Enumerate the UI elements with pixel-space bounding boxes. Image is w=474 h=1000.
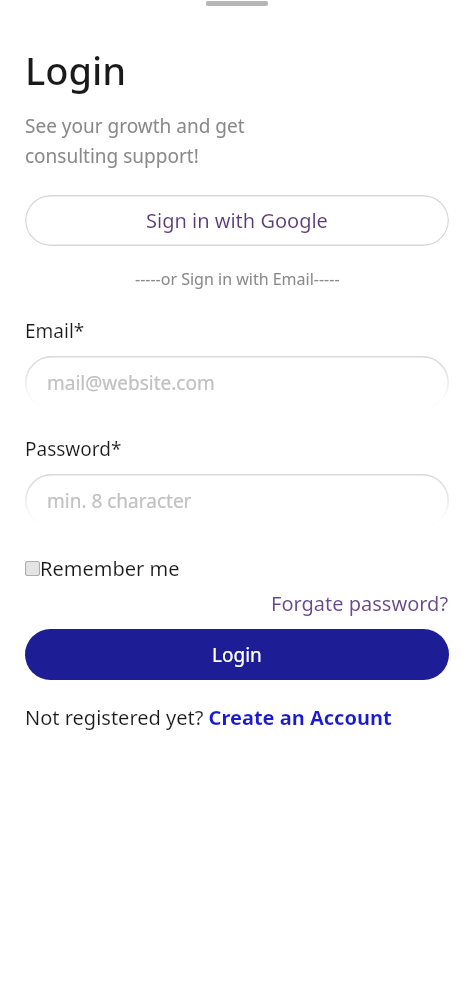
staticText: Remember me <box>40 555 180 582</box>
staticText: consulting support! <box>25 143 199 169</box>
button[interactable]: Remember me <box>25 555 180 582</box>
staticText: min. 8 character <box>47 488 192 514</box>
staticText: mail@website.com <box>47 370 215 396</box>
button[interactable]: Not registered yet? Create an Account <box>25 704 392 731</box>
staticText: Sign in with Google <box>146 207 328 234</box>
staticText: -----or Sign in with Email----- <box>135 268 340 290</box>
button[interactable]: min. 8 character <box>25 474 449 527</box>
button[interactable]: Sign in with Google <box>25 195 449 246</box>
staticText: Login <box>212 642 262 668</box>
staticText: Not registered yet? Create an Account <box>25 704 392 731</box>
button[interactable]: Login <box>25 629 449 680</box>
staticText: Login <box>25 44 127 96</box>
staticText: Email* <box>25 318 85 344</box>
button[interactable]: mail@website.com <box>25 356 449 409</box>
staticText: See your growth and get <box>25 113 245 139</box>
button[interactable]: Forgate password? <box>271 590 449 617</box>
staticText: Forgate password? <box>271 590 449 617</box>
staticText: Password* <box>25 436 122 462</box>
